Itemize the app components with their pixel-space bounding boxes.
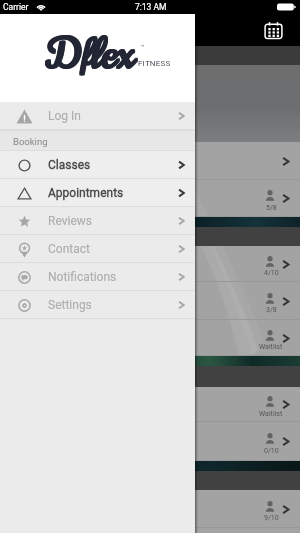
button[interactable]: Appointments <box>0 179 195 207</box>
button[interactable]: 5/8 <box>0 180 300 217</box>
button[interactable]: Calendar <box>263 20 284 41</box>
staticText: Dflex <box>46 24 134 82</box>
button[interactable]: 0/10 <box>0 422 300 461</box>
button[interactable]: Notifications <box>0 263 195 291</box>
staticText: Reviews <box>48 214 92 228</box>
staticText: Booking <box>13 136 48 147</box>
staticText: Settings <box>48 298 92 312</box>
staticText: Waitlist <box>259 343 283 351</box>
button[interactable] <box>0 142 300 180</box>
staticText: Notifications <box>48 270 117 284</box>
button[interactable]: Contact <box>0 235 195 263</box>
button[interactable]: 9/10 <box>0 490 300 528</box>
staticText: Dflex <box>48 26 136 84</box>
staticText: Dflex <box>47 26 135 84</box>
button[interactable]: Waitlist <box>0 387 300 422</box>
staticText: Dflex <box>48 25 136 83</box>
button[interactable]: 3/8 <box>0 282 300 320</box>
staticText: Contact <box>48 242 90 256</box>
staticText: 7:13 AM <box>135 2 167 12</box>
button[interactable]: 4/10 <box>0 246 300 282</box>
staticText: 5/8 <box>266 204 277 212</box>
staticText: Waitlist <box>259 410 283 418</box>
staticText: Dflex <box>47 24 135 82</box>
staticText: FITNESS <box>138 59 171 68</box>
staticText: ™ <box>141 43 145 50</box>
staticText: Carrier <box>3 2 29 12</box>
staticText: 0/10 <box>264 447 279 455</box>
staticText: Classes <box>48 158 91 172</box>
staticText: Dflex <box>46 26 134 84</box>
staticText: Appointments <box>48 186 124 200</box>
staticText: Dflex <box>48 24 136 82</box>
button[interactable]: Waitlist <box>0 320 300 356</box>
staticText: Dflex <box>46 25 134 83</box>
staticText: 4/10 <box>264 269 279 277</box>
button[interactable]: Reviews <box>0 207 195 235</box>
button[interactable]: Log In <box>0 102 195 130</box>
staticText: 3/8 <box>266 306 277 314</box>
staticText: Dflex <box>47 25 135 83</box>
staticText: Log In <box>48 109 81 123</box>
staticText: 9/10 <box>264 514 279 522</box>
button[interactable]: Settings <box>0 291 195 319</box>
button[interactable]: Classes <box>0 151 195 179</box>
